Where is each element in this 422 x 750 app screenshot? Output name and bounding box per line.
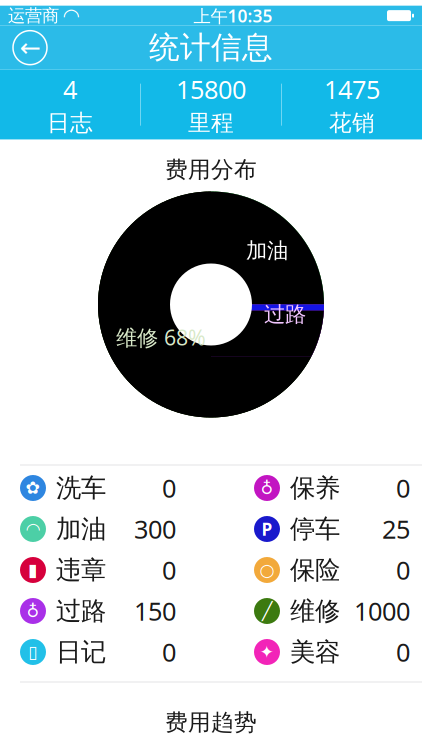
staticText: 洗车 [56,472,106,503]
staticText: 300 [134,512,176,546]
button[interactable]: 返回 [8,26,52,70]
staticText: 加油 [246,237,288,264]
staticText: 违章 [56,554,106,585]
staticText: 上午10:35 [193,4,272,27]
staticText: ✦ [259,642,274,662]
staticText: 美容 [290,636,340,667]
staticText: 保养 [290,472,340,503]
staticText: 保险 [290,554,340,585]
staticText: 停车 [290,513,340,544]
button[interactable]: ♁ [254,467,410,508]
staticText: ○ [259,560,274,580]
staticText: 0 [162,471,176,505]
button[interactable]: ♁ [20,590,176,631]
button[interactable]: ✦ [254,631,410,672]
staticText: 1475 [324,72,380,106]
staticText: 维修 [290,595,340,626]
staticText: 1000 [354,594,410,628]
staticText: ◠ [62,4,79,27]
staticText: 加油 [56,513,106,544]
staticText: 维修 68% [116,323,206,351]
staticText: 日记 [56,636,106,667]
staticText: 费用分布 [165,156,257,183]
staticText: 费用趋势 [165,708,257,736]
staticText: ← [19,33,40,62]
staticText: ▯ [28,642,38,662]
button[interactable]: ○ [254,549,410,590]
staticText: 15800 [176,72,246,106]
staticText: P [261,517,272,540]
staticText: 0 [396,471,410,505]
staticText: ♁ [26,601,39,621]
staticText: ◠ [26,519,39,539]
staticText: ✿ [25,478,40,498]
staticText: 0 [162,635,176,669]
button[interactable]: ◠ [20,508,176,549]
staticText: 里程 [188,109,234,137]
staticText: 0 [162,553,176,587]
button[interactable]: ▯ [20,631,176,672]
staticText: 日志 [47,109,93,137]
staticText: 花销 [329,109,375,137]
staticText: 150 [134,594,176,628]
staticText: 0 [396,553,410,587]
staticText: 4 [63,72,77,106]
staticText: 统计信息 [149,29,273,66]
button[interactable]: P [254,508,410,549]
staticText: 0 [396,635,410,669]
staticText: ╱ [262,601,272,621]
button[interactable]: ╱ [254,590,410,631]
staticText: 25 [382,512,410,546]
staticText: ▮ [28,560,38,580]
button[interactable]: ✿ [20,467,176,508]
staticText: 运营商 [8,5,59,26]
staticText: 过路 [264,301,306,327]
button[interactable]: ▮ [20,549,176,590]
staticText: 过路 [56,595,106,626]
staticText: ♁ [260,478,273,498]
